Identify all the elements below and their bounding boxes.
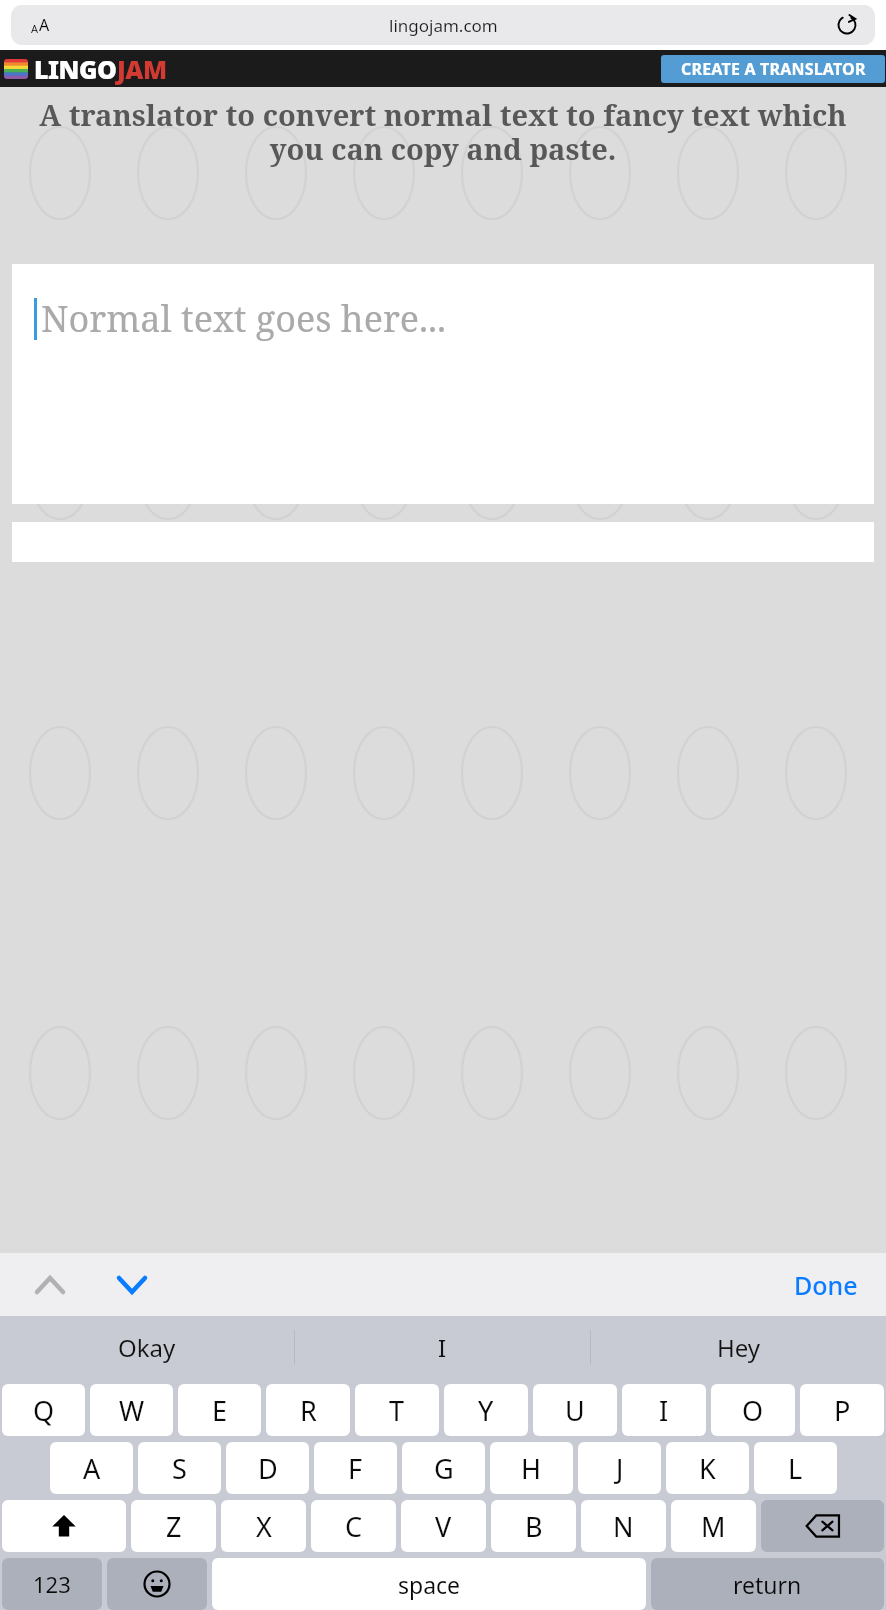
button[interactable]: D [226,1442,309,1494]
staticText: M [701,1508,726,1545]
staticText: H [521,1450,542,1487]
staticText: T [389,1392,405,1429]
staticText: R [300,1392,317,1429]
staticText: Normal text goes here... [41,294,447,343]
staticText: JAM [117,52,167,86]
staticText: A [39,14,50,36]
staticText: U [565,1392,585,1429]
staticText: O [742,1392,764,1429]
button[interactable]: U [533,1384,617,1436]
button[interactable]: return [651,1558,884,1610]
staticText: V [435,1508,452,1545]
staticText: Okay [118,1331,176,1364]
button[interactable]: B [491,1500,576,1552]
button[interactable]: 123 [2,1558,102,1610]
staticText: I [659,1392,669,1429]
staticText: CREATE A TRANSLATOR [681,58,866,80]
button[interactable]: Next field [108,1261,156,1309]
staticText: I [438,1331,447,1364]
staticText: D [258,1450,278,1487]
button[interactable]: T [355,1384,439,1436]
button[interactable]: Previous field [26,1261,74,1309]
staticText: X [256,1508,272,1545]
button[interactable]: Q [2,1384,85,1436]
staticText: L [788,1450,803,1487]
staticText: LINGO [34,52,117,86]
button[interactable]: M [671,1500,756,1552]
button[interactable]: K [666,1442,749,1494]
staticText: Done [794,1268,858,1302]
button[interactable]: Emoji [107,1558,207,1610]
button[interactable]: N [581,1500,666,1552]
button[interactable]: Okay [0,1316,294,1378]
staticText: space [398,1569,461,1600]
staticText: P [834,1392,851,1429]
button[interactable]: A [50,1442,133,1494]
staticText: C [345,1508,363,1545]
staticText: K [699,1450,716,1487]
staticText: G [434,1450,454,1487]
staticText: return [733,1569,802,1600]
button[interactable]: W [90,1384,173,1436]
staticText: B [525,1508,543,1545]
staticText: A [83,1450,101,1487]
staticText: Z [166,1508,182,1545]
staticText: W [119,1392,145,1429]
button[interactable]: J [578,1442,661,1494]
staticText: S [172,1450,187,1487]
button[interactable]: Normal text goes here... [12,264,874,504]
staticText: A translator to convert normal text to f… [10,95,876,168]
button[interactable]: L [754,1442,837,1494]
staticText: Q [33,1392,55,1429]
button[interactable]: Backspace [761,1500,884,1552]
button[interactable]: I [295,1316,590,1378]
button[interactable]: Z [131,1500,216,1552]
button[interactable]: V [401,1500,486,1552]
button[interactable]: F [314,1442,397,1494]
staticText: 123 [33,1569,71,1599]
button[interactable]: space [212,1558,646,1610]
staticText: N [613,1508,634,1545]
button[interactable]: S [138,1442,221,1494]
button[interactable]: H [490,1442,573,1494]
button[interactable]: P [800,1384,884,1436]
button[interactable]: O [711,1384,795,1436]
button[interactable]: Shift [2,1500,126,1552]
button[interactable]: I [622,1384,706,1436]
button[interactable]: R [266,1384,350,1436]
button[interactable]: CREATE A TRANSLATOR [661,55,885,83]
staticText: A [31,21,39,36]
button[interactable]: Text size options [17,5,63,45]
button[interactable]: Reload [827,5,867,45]
staticText: F [348,1450,363,1487]
button[interactable]: Done [786,1262,866,1308]
button[interactable]: X [221,1500,306,1552]
button[interactable]: Hey [591,1316,886,1378]
staticText: lingojam.com [389,14,498,37]
button[interactable]: Y [444,1384,528,1436]
button[interactable]: E [178,1384,261,1436]
staticText: Hey [717,1331,761,1364]
staticText: J [616,1450,624,1487]
button[interactable]: G [402,1442,485,1494]
staticText: E [212,1392,228,1429]
staticText: Y [478,1392,494,1429]
button[interactable]: C [311,1500,396,1552]
